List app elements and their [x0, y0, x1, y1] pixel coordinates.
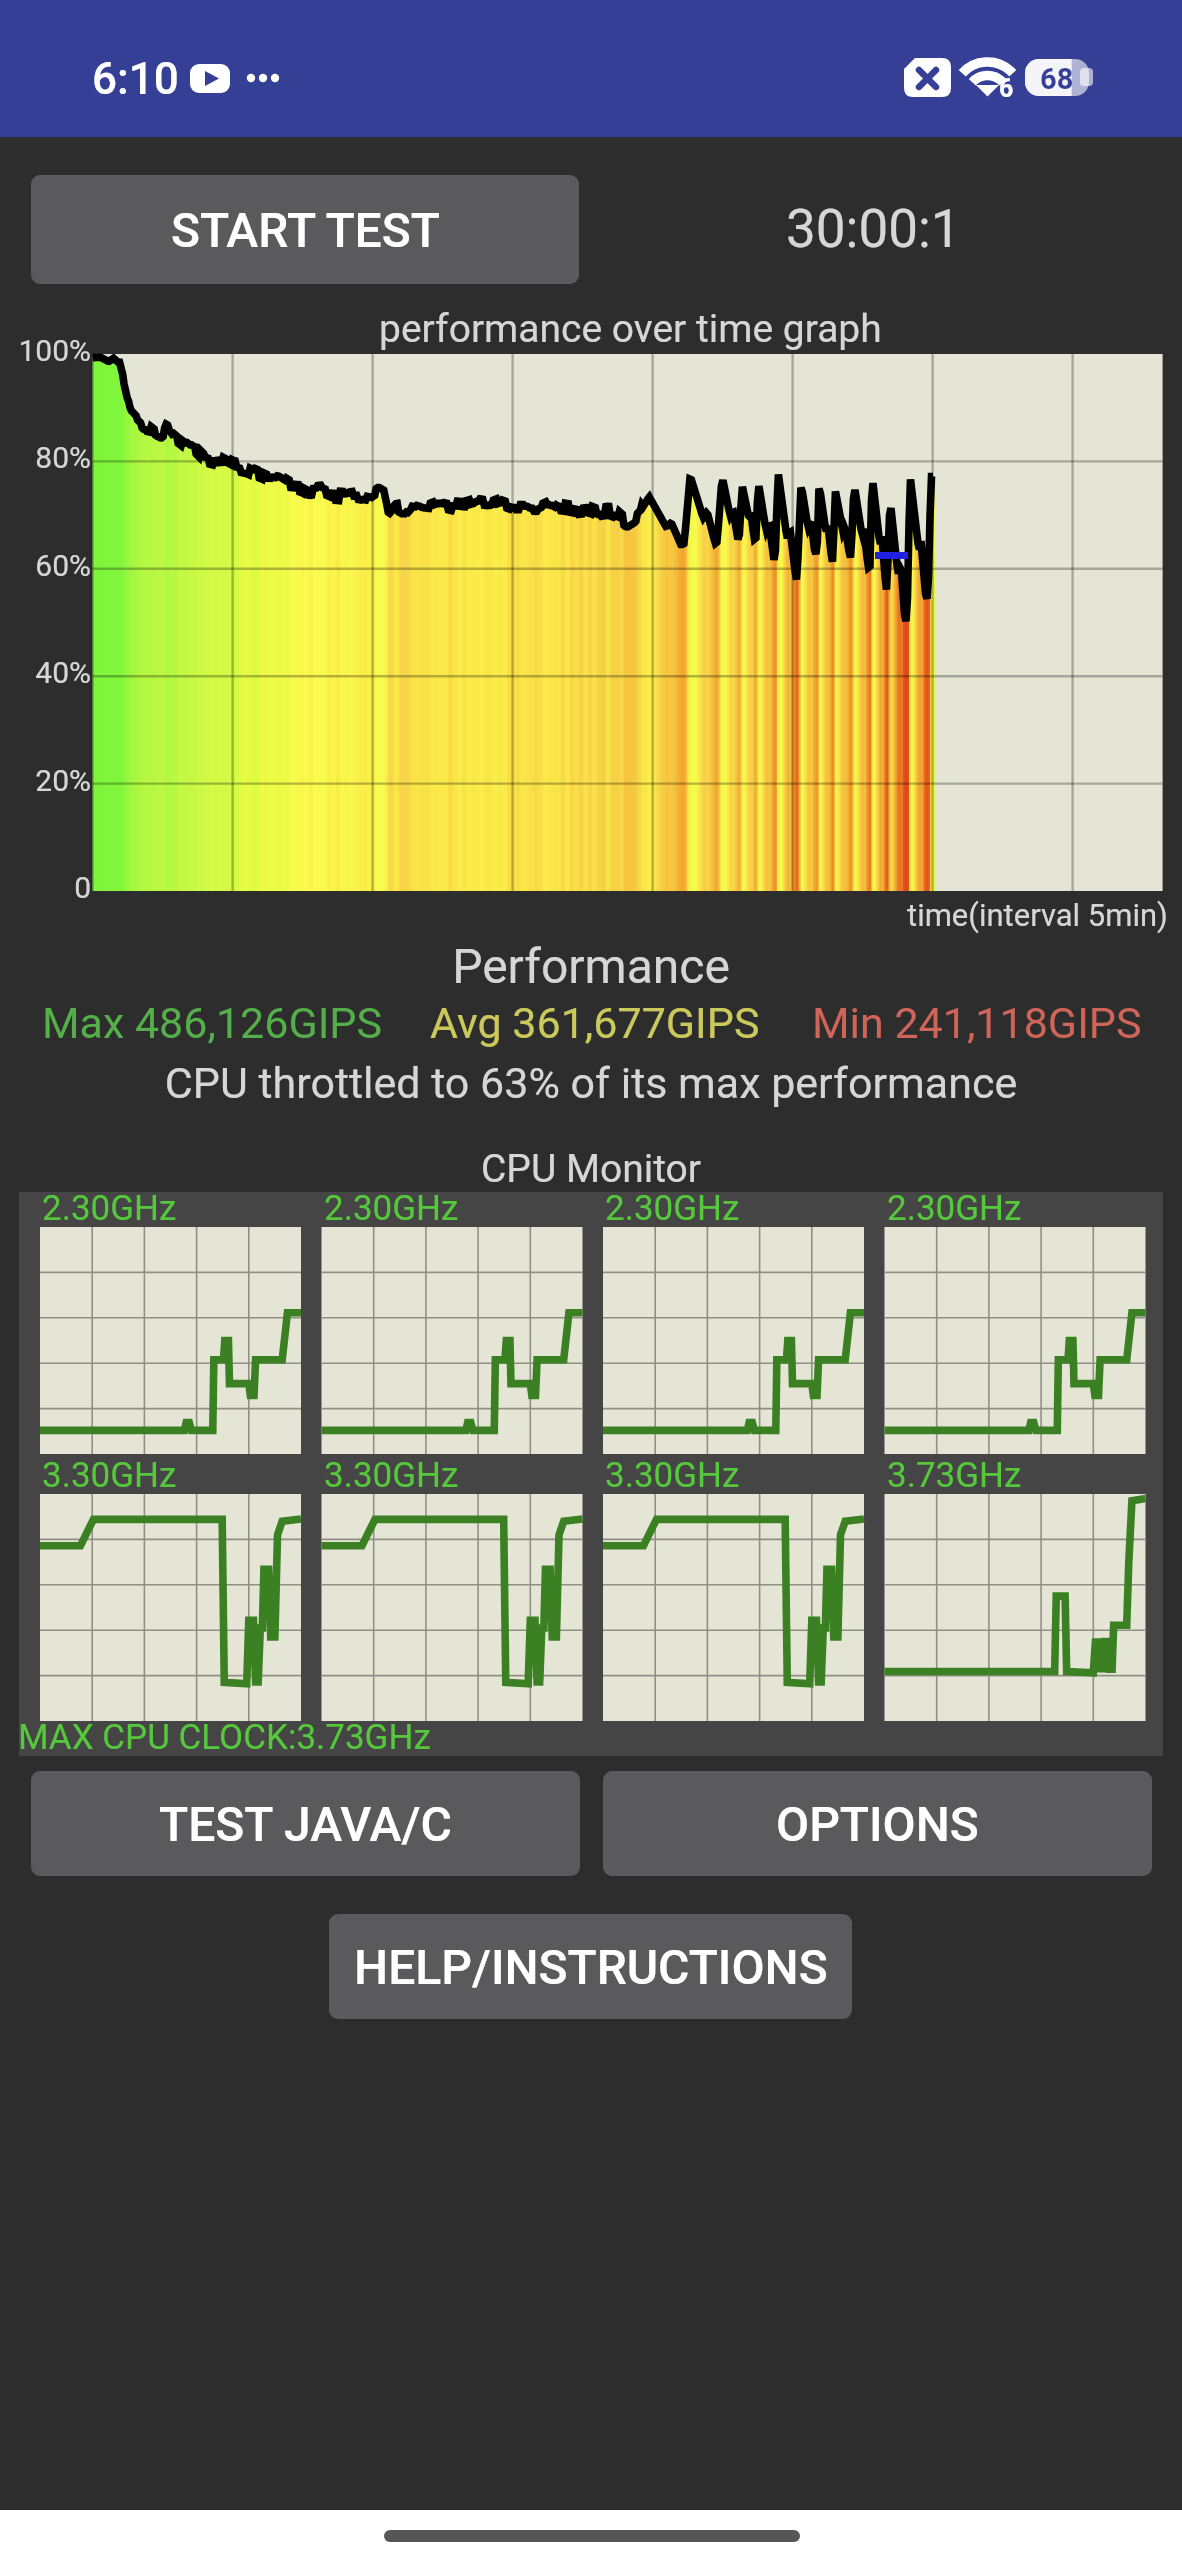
staticText: Max 486,126GIPS — [42, 998, 383, 1048]
staticText: HELP/INSTRUCTIONS — [354, 1939, 828, 1995]
button[interactable]: HELP/INSTRUCTIONS — [329, 1914, 852, 2019]
staticText: TEST JAVA/C — [159, 1796, 452, 1852]
staticText: 80% — [0, 440, 91, 475]
staticText: 100% — [0, 333, 91, 368]
staticText: time(interval 5min) — [907, 897, 1168, 933]
other: Home — [384, 2530, 800, 2542]
button[interactable]: START TEST — [31, 175, 579, 284]
staticText: OPTIONS — [776, 1796, 979, 1852]
staticText: Min 241,118GIPS — [812, 998, 1142, 1048]
staticText: 30:00:1 — [786, 198, 961, 260]
staticText: 6 — [999, 74, 1014, 103]
staticText: MAX CPU CLOCK:3.73GHz — [18, 1717, 431, 1758]
staticText: 20% — [0, 763, 91, 798]
button[interactable]: TEST JAVA/C — [31, 1771, 580, 1876]
staticText: 3.30GHz — [324, 1455, 459, 1496]
staticText: 2.30GHz — [324, 1188, 459, 1229]
staticText: 2.30GHz — [887, 1188, 1022, 1229]
staticText: 68 — [1040, 62, 1074, 96]
staticText: Avg 361,677GIPS — [430, 998, 760, 1048]
staticText: 3.30GHz — [605, 1455, 740, 1496]
staticText: 2.30GHz — [42, 1188, 177, 1229]
staticText: 60% — [0, 548, 91, 583]
staticText: CPU Monitor — [0, 1146, 1182, 1192]
button[interactable]: OPTIONS — [603, 1771, 1152, 1876]
staticText: CPU throttled to 63% of its max performa… — [0, 1058, 1182, 1108]
staticText: 3.73GHz — [887, 1455, 1022, 1496]
staticText: 2.30GHz — [605, 1188, 740, 1229]
staticText: Performance — [0, 938, 1182, 994]
staticText: 6:10 — [92, 53, 179, 105]
staticText: performance over time graph — [379, 306, 882, 352]
staticText: 3.30GHz — [42, 1455, 177, 1496]
staticText: START TEST — [171, 202, 440, 258]
staticText: 0 — [0, 870, 91, 905]
staticText: 40% — [0, 655, 91, 690]
